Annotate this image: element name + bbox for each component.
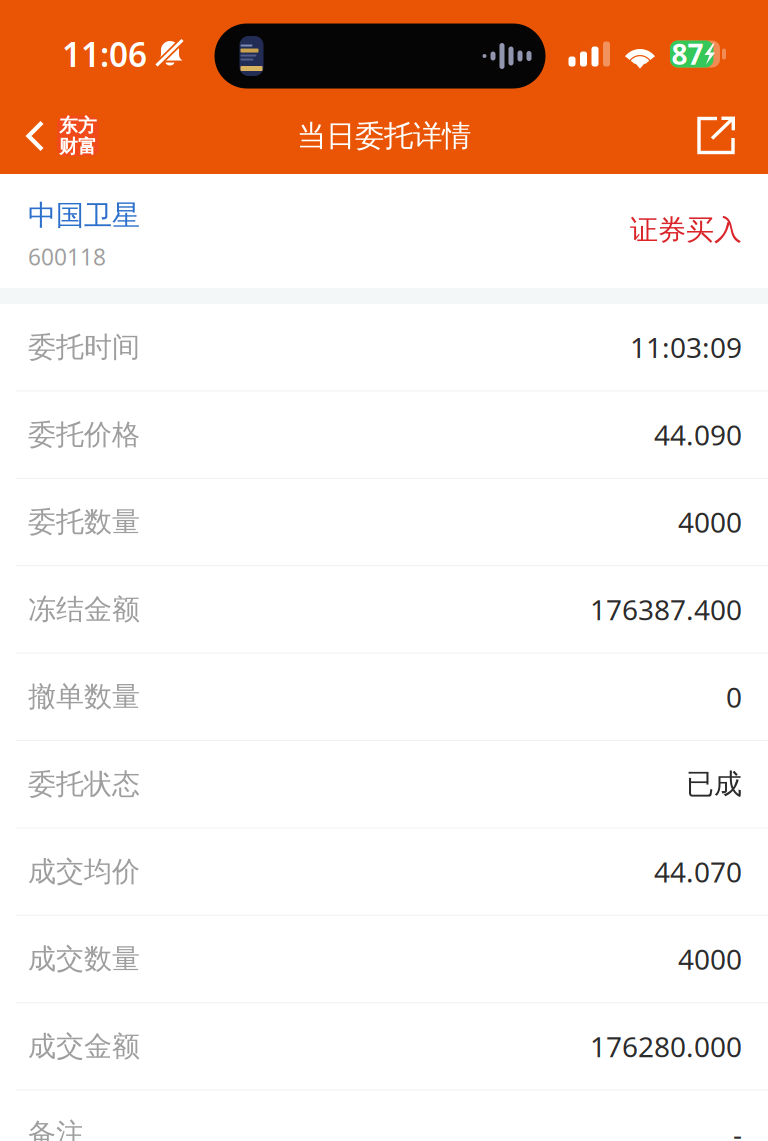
staticText: 已成	[686, 767, 742, 801]
staticText: 0	[726, 678, 742, 715]
staticText: 委托时间	[28, 330, 140, 364]
staticText: 成交均价	[28, 854, 140, 889]
staticText: 备注	[28, 1117, 84, 1141]
staticText: -	[733, 1115, 742, 1141]
staticText: 4000	[678, 940, 742, 978]
staticText: 东方	[59, 114, 97, 137]
staticText: 4000	[678, 503, 742, 541]
staticText: 中国卫星	[28, 198, 140, 233]
staticText: 财富	[59, 135, 97, 158]
button[interactable]: Share	[697, 110, 768, 161]
staticText: 44.070	[654, 853, 742, 890]
staticText: 600118	[28, 242, 106, 272]
staticText: 成交金额	[28, 1029, 140, 1064]
staticText: 成交数量	[28, 942, 140, 976]
staticText: 委托价格	[28, 417, 140, 452]
button[interactable]: 返回 东方财富	[0, 110, 99, 162]
staticText: 176387.400	[590, 591, 742, 628]
staticText: 当日委托详情	[297, 118, 471, 154]
staticText: 11:03:09	[630, 329, 742, 366]
staticText: 11:06	[62, 32, 147, 76]
staticText: 撤单数量	[28, 680, 140, 714]
staticText: 44.090	[654, 416, 742, 453]
staticText: 委托数量	[28, 505, 140, 539]
staticText: 证券买入	[630, 213, 742, 247]
staticText: 委托状态	[28, 767, 140, 801]
staticText: 冻结金额	[28, 592, 140, 627]
staticText: 176280.000	[590, 1028, 742, 1065]
staticText: 87	[671, 35, 703, 73]
